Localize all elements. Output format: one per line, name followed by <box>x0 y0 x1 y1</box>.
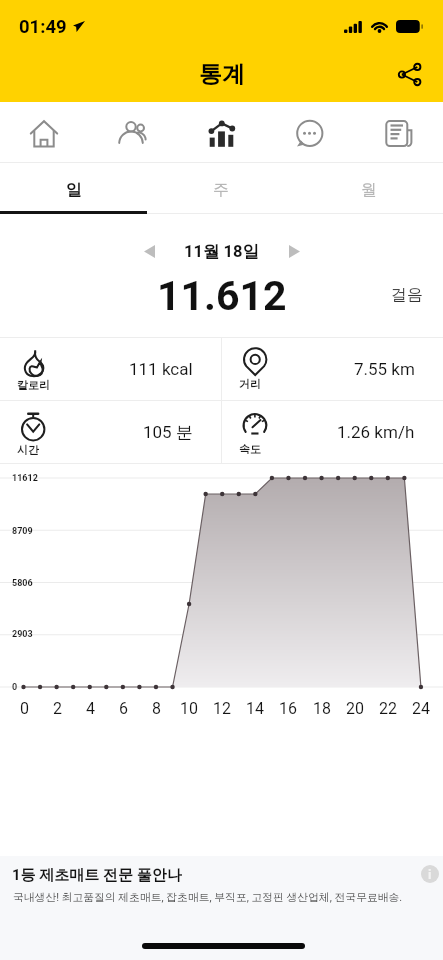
staticText: 2903 <box>12 629 33 640</box>
button[interactable]: 속도 <box>222 401 443 463</box>
staticText: 거리 <box>239 377 261 391</box>
button[interactable]: 일 <box>0 163 147 214</box>
staticText: 주 <box>213 180 229 200</box>
staticText: 8709 <box>12 526 33 537</box>
button[interactable]: Friends <box>88 102 176 163</box>
staticText: i <box>428 867 432 882</box>
staticText: 월 <box>361 180 377 200</box>
staticText: 칼로리 <box>17 378 50 392</box>
staticText: 11월 18일 <box>184 241 259 262</box>
staticText: 18 <box>313 699 331 718</box>
staticText: 국내생산! 최고품질의 제초매트, 잡초매트, 부직포, 고정핀 생산업체, 전… <box>13 891 403 905</box>
staticText: 0 <box>12 682 18 693</box>
staticText: 01:49 <box>19 16 67 38</box>
staticText: 1등 제초매트 전문 풀안나 <box>12 866 182 885</box>
staticText: 11.612 <box>157 272 287 318</box>
button[interactable]: 거리 <box>222 338 443 400</box>
staticText: 6 <box>119 699 128 718</box>
button[interactable]: Statistics <box>176 102 265 163</box>
staticText: 16 <box>279 699 297 718</box>
staticText: 1.26 km/h <box>337 422 415 442</box>
staticText: 일 <box>66 180 82 200</box>
staticText: 11612 <box>12 473 38 484</box>
staticText: 5806 <box>12 578 33 589</box>
button[interactable]: Share <box>383 50 435 99</box>
button[interactable]: 1등 제초매트 전문 풀안나 <box>0 856 443 960</box>
staticText: 8 <box>152 699 161 718</box>
button[interactable]: 월 <box>295 163 443 214</box>
button[interactable]: Chat <box>265 102 354 163</box>
staticText: 7.55 km <box>354 359 415 379</box>
button[interactable]: News <box>354 102 443 163</box>
staticText: 24 <box>412 699 430 718</box>
staticText: 0 <box>20 699 29 718</box>
staticText: 속도 <box>239 442 261 456</box>
button[interactable]: 칼로리 <box>0 338 221 400</box>
staticText: 111 kcal <box>129 359 193 379</box>
staticText: 4 <box>86 699 95 718</box>
button[interactable]: 주 <box>147 163 295 214</box>
staticText: 105 분 <box>143 422 193 443</box>
button[interactable]: Ad info <box>421 865 439 883</box>
button[interactable]: 시간 <box>0 401 221 463</box>
staticText: 통계 <box>199 60 245 89</box>
staticText: 12 <box>213 699 231 718</box>
staticText: 20 <box>346 699 364 718</box>
button[interactable]: Next day <box>273 230 315 272</box>
staticText: 14 <box>246 699 264 718</box>
button[interactable]: Home <box>0 102 88 163</box>
staticText: 10 <box>180 699 198 718</box>
staticText: 시간 <box>17 443 39 457</box>
staticText: 22 <box>379 699 397 718</box>
staticText: 걸음 <box>391 285 423 305</box>
button[interactable]: Previous day <box>128 230 170 272</box>
staticText: 2 <box>53 699 62 718</box>
